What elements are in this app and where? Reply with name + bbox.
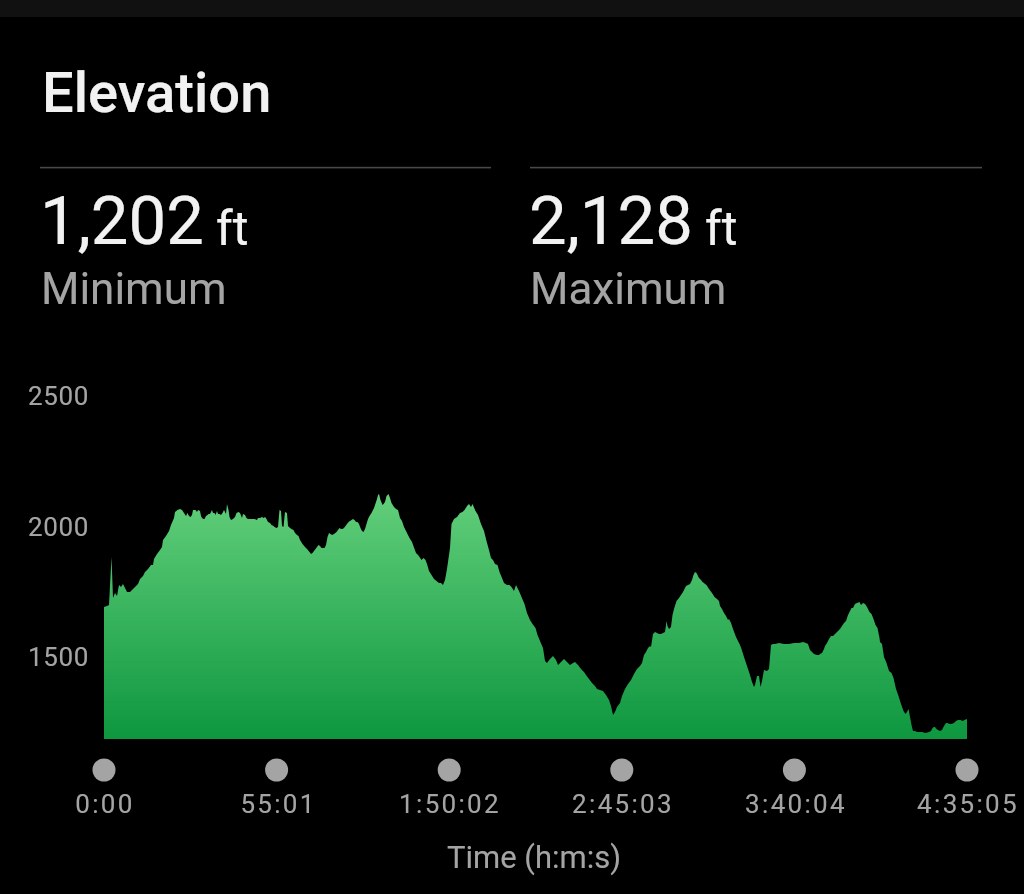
staticText: Time (h:m:s) [447, 839, 622, 875]
staticText: 2500 [28, 381, 89, 411]
staticText: 1:50:02 [399, 789, 501, 819]
button[interactable]: 2,128 [529, 182, 693, 261]
staticText: ft [705, 200, 738, 256]
staticText: Elevation [42, 60, 272, 126]
staticText: 2000 [28, 512, 89, 542]
button[interactable]: 1,202 [40, 182, 204, 261]
staticText: ft [216, 200, 249, 256]
staticText: Maximum [530, 263, 727, 315]
staticText: 2:45:03 [572, 789, 674, 819]
staticText: 1,202 [40, 182, 204, 261]
staticText: 3:40:04 [745, 789, 847, 819]
staticText: Minimum [41, 263, 227, 315]
staticText: 4:35:05 [917, 789, 1019, 819]
staticText: 0:00 [75, 789, 135, 819]
button[interactable]: Elevation [42, 60, 272, 126]
staticText: 2,128 [529, 182, 693, 261]
staticText: 55:01 [240, 789, 317, 819]
staticText: 1500 [28, 642, 89, 672]
